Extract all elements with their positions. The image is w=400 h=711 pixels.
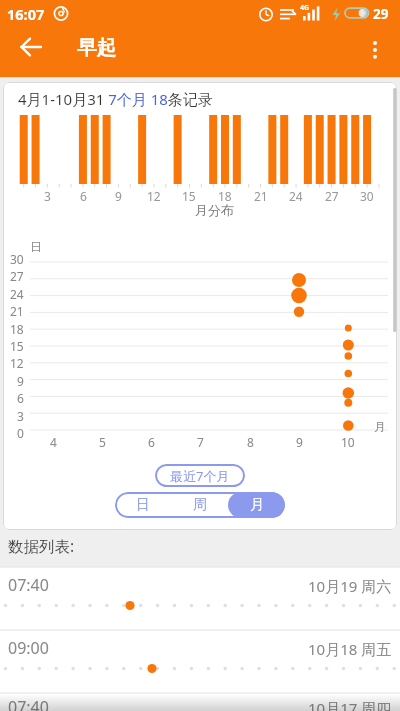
staticText: 12	[147, 188, 161, 204]
staticText: 4G	[300, 3, 310, 13]
staticText: 数据列表:	[8, 535, 75, 556]
staticText: 最近7个月	[170, 467, 230, 485]
staticText: 30	[360, 188, 374, 204]
button[interactable]: 09:00	[0, 630, 400, 693]
staticText: 12	[10, 355, 24, 371]
staticText: 6	[148, 434, 155, 450]
staticText: 15	[10, 338, 24, 354]
staticText: 24	[289, 188, 303, 204]
button[interactable]: 日	[115, 492, 171, 518]
staticText: 29	[373, 5, 389, 23]
staticText: 30	[10, 251, 24, 267]
staticText: 3	[17, 408, 24, 424]
staticText: 日	[30, 239, 42, 254]
staticText: 0	[17, 425, 24, 441]
staticText: 9	[296, 434, 303, 450]
staticText: 21	[254, 188, 268, 204]
staticText: 27	[10, 268, 24, 284]
staticText: 9	[17, 373, 24, 389]
button[interactable]	[360, 32, 392, 62]
button[interactable]: 07:40	[0, 693, 400, 711]
staticText: 10	[341, 434, 355, 450]
staticText: 周	[193, 496, 207, 514]
staticText: 07:40	[8, 574, 49, 596]
staticText: 6	[17, 390, 24, 406]
staticText: 21	[10, 303, 24, 319]
staticText: 月分布	[195, 202, 234, 218]
button[interactable]	[12, 32, 50, 62]
staticText: 24	[10, 286, 24, 302]
button[interactable]: 周	[171, 492, 228, 518]
staticText: 4月1-10月31 7个月 18条记录	[18, 89, 213, 109]
staticText: 月	[250, 496, 264, 514]
staticText: 早起	[77, 35, 116, 60]
staticText: 09:00	[8, 637, 49, 659]
staticText: 3	[44, 188, 51, 204]
staticText: 7	[197, 434, 204, 450]
staticText: 9	[115, 188, 122, 204]
staticText: 10月17 周四	[308, 698, 392, 711]
button[interactable]: 07:40	[0, 567, 400, 630]
staticText: 18	[10, 321, 24, 337]
staticText: 5	[99, 434, 106, 450]
staticText: 10月18 周五	[308, 639, 392, 659]
staticText: 10月19 周六	[308, 576, 392, 596]
staticText: 8	[247, 434, 254, 450]
staticText: 月	[374, 419, 386, 434]
staticText: 07:40	[8, 696, 49, 711]
button[interactable]: 月	[228, 492, 285, 518]
staticText: 日	[136, 496, 150, 514]
staticText: 15	[182, 188, 196, 204]
staticText: 16:07	[7, 4, 45, 24]
button[interactable]: 最近7个月	[155, 464, 245, 487]
staticText: 4	[50, 434, 57, 450]
staticText: 18	[218, 188, 232, 204]
staticText: 27	[325, 188, 339, 204]
staticText: 6	[80, 188, 87, 204]
